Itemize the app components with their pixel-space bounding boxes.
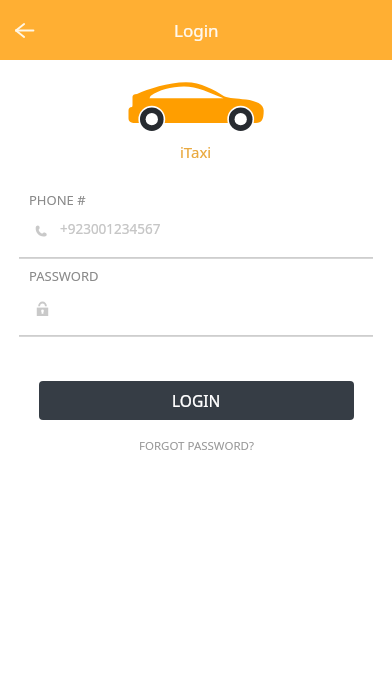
- button[interactable]: LOGIN: [39, 381, 354, 420]
- staticText: PHONE #: [29, 191, 86, 209]
- button[interactable]: FORGOT PASSWORD?: [131, 433, 262, 459]
- staticText: LOGIN: [172, 390, 221, 411]
- staticText: PASSWORD: [29, 267, 99, 285]
- button[interactable]: Back: [5, 11, 43, 49]
- staticText: iTaxi: [180, 142, 212, 162]
- staticText: +923001234567: [60, 220, 161, 238]
- staticText: FORGOT PASSWORD?: [139, 438, 254, 454]
- staticText: Login: [174, 19, 219, 42]
